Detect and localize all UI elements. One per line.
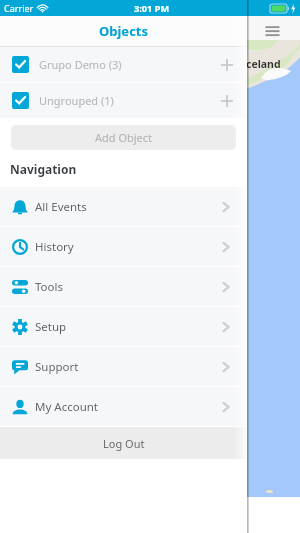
staticText: 3:01 PM [134, 2, 170, 15]
button[interactable]: Log Out [0, 427, 247, 459]
button[interactable]: Support [0, 347, 247, 386]
button[interactable]: Grupo Demo (3) [0, 47, 247, 82]
staticText: All Events [35, 199, 87, 215]
staticText: Navigation [10, 161, 77, 177]
button[interactable]: Setup [0, 307, 247, 346]
staticText: Tools [35, 279, 63, 295]
staticText: Setup [35, 319, 67, 335]
staticText: Add Object [95, 130, 153, 145]
button[interactable]: Menu [257, 18, 287, 44]
staticText: Support [35, 359, 79, 375]
staticText: Grupo Demo (3) [39, 57, 122, 72]
button[interactable]: History [0, 227, 247, 266]
button[interactable]: Add Object [11, 125, 236, 150]
staticText: My Account [35, 399, 98, 415]
staticText: Objects [99, 22, 149, 40]
button[interactable]: Ungrouped (1) [0, 83, 247, 118]
staticText: celand [246, 57, 281, 71]
staticText: Carrier [4, 2, 34, 14]
button[interactable]: My Account [0, 387, 247, 426]
staticText: Log Out [103, 436, 145, 451]
staticText: History [35, 239, 74, 255]
button[interactable]: Tools [0, 267, 247, 306]
staticText: Ungrouped (1) [39, 93, 114, 108]
button[interactable]: All Events [0, 187, 247, 226]
